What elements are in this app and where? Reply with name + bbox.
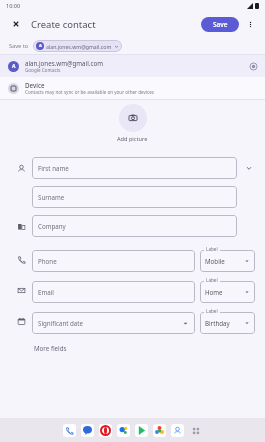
button[interactable]: More fields xyxy=(32,343,69,353)
staticText: Phone xyxy=(38,257,57,265)
button[interactable]: Home xyxy=(200,281,255,303)
staticText: Birthday xyxy=(205,319,230,327)
staticText: Email xyxy=(38,288,54,296)
button[interactable]: All apps xyxy=(189,424,202,437)
staticText: Device xyxy=(25,81,45,89)
button[interactable]: Opera xyxy=(99,424,112,437)
button[interactable]: Play Store xyxy=(135,424,148,437)
staticText: alan.jones.wm@gmail.com xyxy=(46,43,112,50)
button[interactable]: Mobile xyxy=(200,250,255,272)
staticText: alan.jones.wm@gmail.com xyxy=(25,59,103,67)
staticText: Label xyxy=(206,246,218,252)
button[interactable]: A xyxy=(33,40,122,52)
button[interactable]: Expand name xyxy=(243,162,255,174)
button[interactable]: Add picture xyxy=(119,104,147,132)
staticText: Save to xyxy=(9,42,29,50)
staticText: More fields xyxy=(34,344,67,352)
staticText: Company xyxy=(38,222,66,230)
staticText: Label xyxy=(206,308,218,314)
staticText: Google Contacts xyxy=(25,67,61,73)
staticText: Surname xyxy=(38,193,65,201)
button[interactable]: More options xyxy=(243,17,257,31)
staticText: A xyxy=(12,63,16,70)
button[interactable]: Birthday xyxy=(200,312,255,334)
staticText: 10:00 xyxy=(6,2,21,9)
button[interactable]: Phone xyxy=(32,250,195,272)
button[interactable]: Close xyxy=(8,16,24,32)
button[interactable]: Email xyxy=(32,281,195,303)
button[interactable]: Contacts app xyxy=(171,424,184,437)
button[interactable]: Surname xyxy=(32,186,237,208)
button[interactable]: Device xyxy=(0,77,265,99)
staticText: Significant date xyxy=(38,319,84,327)
button[interactable]: Photos xyxy=(153,424,166,437)
staticText: First name xyxy=(38,164,69,172)
staticText: Add picture xyxy=(117,135,148,143)
staticText: Home xyxy=(205,288,223,296)
button[interactable]: A xyxy=(0,55,265,77)
staticText: A xyxy=(39,43,42,49)
staticText: Label xyxy=(206,277,218,283)
staticText: Create contact xyxy=(31,18,96,31)
button[interactable]: First name xyxy=(32,157,237,179)
button[interactable]: Contacts xyxy=(117,424,130,437)
button[interactable]: Significant date xyxy=(32,312,195,334)
button[interactable]: Save xyxy=(201,17,239,32)
button[interactable]: Messages xyxy=(81,424,94,437)
button[interactable]: Company xyxy=(32,215,237,237)
staticText: Contacts may not sync or be available on… xyxy=(25,89,155,95)
button[interactable]: Phone xyxy=(63,424,76,437)
staticText: Mobile xyxy=(205,257,225,265)
staticText: Save xyxy=(213,20,228,29)
